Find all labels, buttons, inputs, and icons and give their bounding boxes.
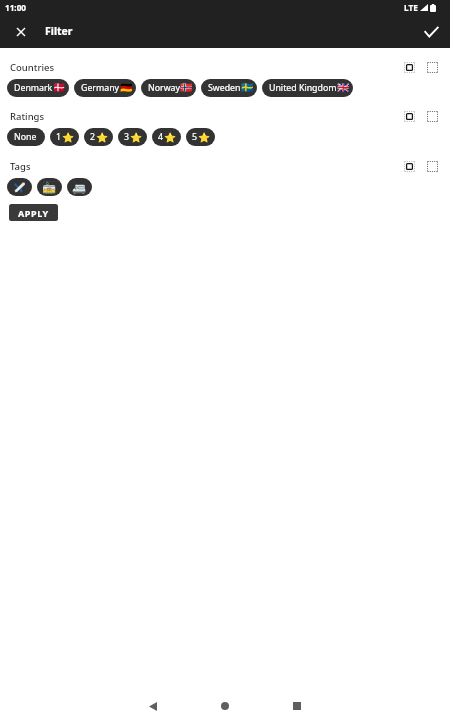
staticText: 1 [56,131,62,143]
staticText: 4 [158,131,164,143]
button[interactable]: Norway [141,79,196,97]
button[interactable]: Deselect all [425,110,439,122]
button[interactable]: United Kingdom [262,79,353,97]
button[interactable]: 2 [84,128,113,146]
staticText: APPLY [18,207,49,219]
staticText: 🇳🇴 [180,82,193,94]
button[interactable]: 3 [118,128,147,146]
button[interactable]: Select all [402,160,416,172]
button[interactable]: Flights [7,178,32,196]
button[interactable]: Deselect all [425,160,439,172]
staticText: Tags [10,160,31,172]
button[interactable]: Germany [74,79,136,97]
staticText: Norway [148,82,180,94]
button[interactable]: APPLY [9,204,58,221]
staticText: ⭐ [62,132,75,143]
button[interactable]: Home [207,692,243,720]
staticText: 11:00 [5,2,27,13]
staticText: 🚐 [72,181,87,194]
staticText: ⭐ [130,132,143,143]
button[interactable]: 4 [152,128,181,146]
staticText: Ratings [10,110,45,122]
staticText: 🇩🇰 [53,82,66,94]
staticText: Denmark [14,82,53,94]
staticText: 🚋 [42,181,57,194]
staticText: ⭐ [198,132,211,143]
staticText: 5 [192,131,198,143]
button[interactable]: Back [135,692,171,720]
staticText: ⭐ [96,132,109,143]
button[interactable]: Close [9,20,32,43]
button[interactable]: None [7,128,45,146]
staticText: 🇬🇧 [337,82,350,94]
button[interactable]: Sweden [201,79,257,97]
staticText: Germany [81,82,120,94]
staticText: ⭐ [164,132,177,143]
staticText: Countries [10,61,55,73]
staticText: Filter [45,24,73,38]
button[interactable]: Trains [37,178,62,196]
button[interactable]: Recents [279,692,315,720]
button[interactable]: 5 [186,128,215,146]
staticText: Sweden [208,82,241,94]
button[interactable]: Buses [67,178,92,196]
staticText: 🇩🇪 [120,82,133,94]
staticText: None [14,131,37,143]
staticText: 2 [90,131,96,143]
button[interactable]: 1 [50,128,79,146]
button[interactable]: Select all [402,110,416,122]
button[interactable]: Denmark [7,79,69,97]
staticText: 3 [124,131,130,143]
button[interactable]: Apply filter [420,20,443,43]
staticText: LTE [404,2,418,13]
staticText: 🇸🇪 [241,82,254,94]
button[interactable]: Select all [402,61,416,73]
button[interactable]: Deselect all [425,61,439,73]
staticText: United Kingdom [269,82,337,94]
